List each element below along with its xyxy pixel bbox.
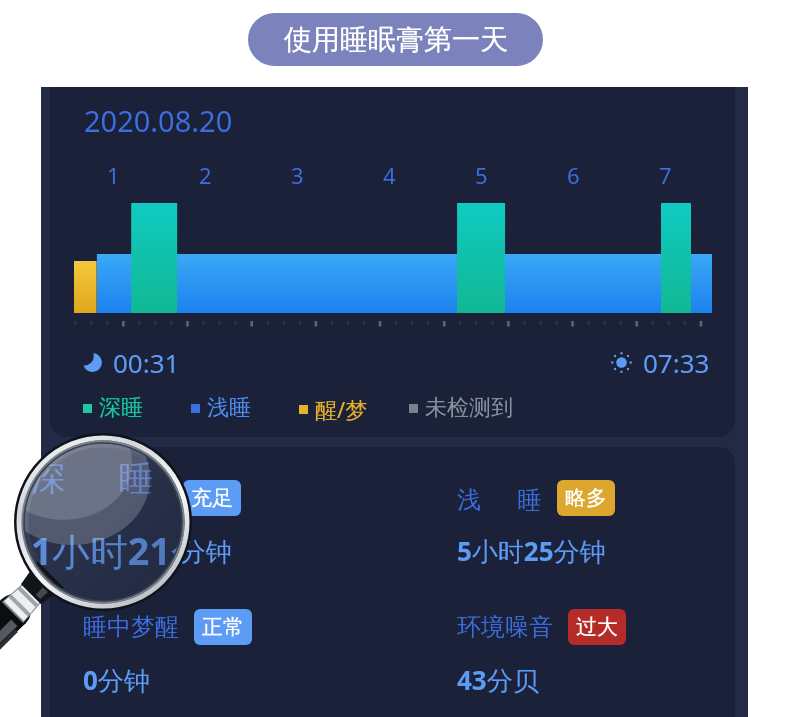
staticText: 充足: [187, 457, 248, 494]
staticText: 2020.08.20: [84, 101, 233, 140]
button[interactable]: 正常: [192, 633, 276, 684]
staticText: 7: [659, 160, 672, 190]
staticText: 1小时21分钟: [31, 525, 247, 576]
staticText: 过大: [746, 640, 790, 677]
staticText: 深 睡: [83, 482, 168, 515]
staticText: 5小时25分钟: [573, 525, 789, 576]
staticText: 5: [475, 160, 488, 190]
staticText: 1: [107, 160, 120, 190]
staticText: 环境噪音: [457, 612, 553, 642]
button[interactable]: 过大: [568, 609, 626, 645]
staticText: 正常: [202, 614, 244, 640]
button[interactable]: 略多: [718, 450, 790, 501]
other: Bedtime: [80, 351, 103, 374]
button[interactable]: 充足: [176, 450, 260, 501]
other: Bedtime: [26, 267, 60, 300]
staticText: 5小时25分钟: [457, 533, 606, 569]
staticText: 略多: [730, 457, 790, 494]
button[interactable]: 过大: [734, 633, 790, 684]
staticText: 睡中梦醒: [83, 612, 179, 642]
button[interactable]: 充足: [183, 480, 241, 516]
staticText: 未检测到: [527, 328, 654, 368]
staticText: 0分钟: [31, 709, 128, 717]
staticText: 深睡: [54, 328, 118, 368]
staticText: 0分钟: [83, 662, 150, 698]
staticText: 环境噪音: [573, 638, 712, 680]
staticText: 深睡: [99, 394, 143, 422]
staticText: 未检测到: [425, 394, 513, 422]
staticText: 2: [199, 160, 212, 190]
staticText: 00:31: [113, 345, 180, 380]
staticText: 使用睡眠膏第一天: [284, 22, 508, 57]
staticText: 浅 睡: [573, 453, 696, 500]
staticText: 43分贝: [457, 662, 539, 698]
staticText: 过大: [576, 614, 618, 640]
staticText: 4: [383, 160, 396, 190]
button[interactable]: 使用睡眠膏第一天: [248, 13, 543, 66]
staticText: 充足: [191, 485, 233, 511]
other: Wake time: [610, 351, 633, 374]
staticText: 正常: [203, 640, 264, 677]
staticText: 浅睡: [207, 394, 251, 422]
staticText: 07:33: [643, 345, 710, 380]
staticText: 醒/梦: [315, 394, 368, 424]
staticText: 3: [291, 160, 304, 190]
staticText: 4: [466, 0, 485, 38]
staticText: 略多: [565, 485, 607, 511]
staticText: 睡中梦醒: [31, 638, 170, 680]
button[interactable]: 略多: [557, 480, 615, 516]
staticText: 浅 睡: [457, 482, 542, 515]
staticText: 1小时21分钟: [83, 533, 232, 569]
staticText: 3: [332, 0, 351, 38]
button[interactable]: 正常: [194, 609, 252, 645]
staticText: 深 睡: [31, 453, 154, 500]
staticText: 00:31: [74, 258, 171, 308]
staticText: 6: [567, 160, 580, 190]
